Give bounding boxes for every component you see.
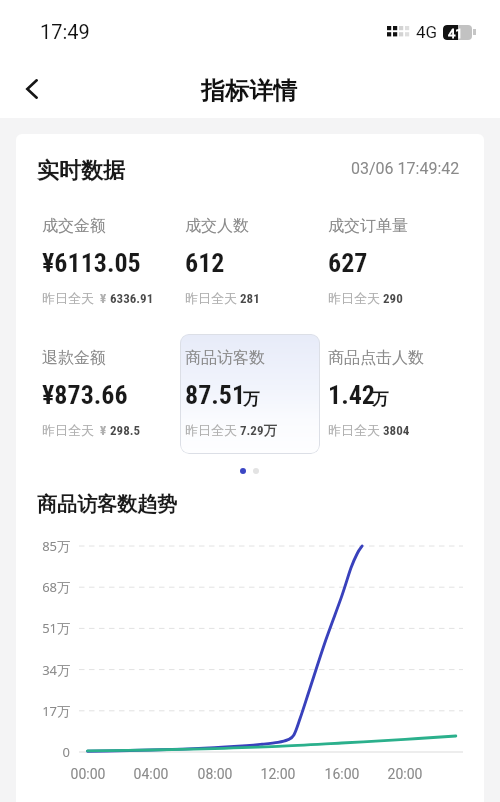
staticText: 昨日全天 — [185, 290, 237, 306]
staticText: 298.5 — [110, 423, 141, 438]
staticText: 290 — [383, 291, 403, 306]
staticText: ¥ — [94, 291, 110, 306]
button[interactable]: Back — [9, 67, 53, 111]
staticText: 20:00 — [375, 766, 435, 782]
staticText: 08:00 — [185, 766, 245, 782]
staticText: 87.51 — [185, 380, 246, 410]
staticText: 03/06 17:49:42 — [351, 159, 460, 178]
button[interactable] — [180, 334, 320, 454]
staticText: 00:00 — [58, 766, 118, 782]
staticText: 85万 — [10, 537, 70, 555]
staticText: 17万 — [10, 702, 70, 720]
staticText: 627 — [328, 248, 368, 278]
staticText: ¥ — [94, 423, 110, 438]
staticText: 成交金额 — [42, 216, 106, 236]
staticText: 17:49 — [40, 20, 90, 43]
staticText: 612 — [185, 248, 225, 278]
staticText: 12:00 — [248, 766, 308, 782]
staticText: 成交订单量 — [328, 216, 408, 236]
staticText: 指标详情 — [201, 76, 297, 106]
staticText: 41 — [448, 26, 463, 40]
staticText: 51万 — [10, 619, 70, 637]
staticText: 4G — [416, 22, 438, 42]
staticText: 实时数据 — [37, 157, 125, 185]
staticText: 281 — [240, 291, 260, 306]
staticText: 0 — [10, 743, 70, 761]
staticText: 7.29万 — [240, 422, 277, 438]
staticText: 万 — [372, 389, 389, 410]
staticText: 6336.91 — [110, 291, 154, 306]
staticText: 16:00 — [312, 766, 372, 782]
staticText: 昨日全天 — [185, 422, 237, 438]
staticText: 成交人数 — [185, 216, 249, 236]
staticText: 退款金额 — [42, 348, 106, 368]
staticText: 1.42 — [328, 380, 375, 410]
staticText: 昨日全天 — [328, 422, 380, 438]
staticText: 昨日全天 — [42, 422, 94, 438]
staticText: 昨日全天 — [328, 290, 380, 306]
staticText: 商品访客数 — [185, 348, 265, 368]
staticText: ¥6113.05 — [42, 248, 141, 278]
staticText: 商品访客数趋势 — [37, 492, 177, 517]
staticText: 3804 — [383, 423, 410, 438]
staticText: 68万 — [10, 578, 70, 596]
staticText: ¥873.66 — [42, 380, 128, 410]
staticText: 04:00 — [121, 766, 181, 782]
staticText: 万 — [243, 389, 260, 410]
staticText: 昨日全天 — [42, 290, 94, 306]
staticText: 34万 — [10, 661, 70, 679]
staticText: 商品点击人数 — [328, 348, 424, 368]
